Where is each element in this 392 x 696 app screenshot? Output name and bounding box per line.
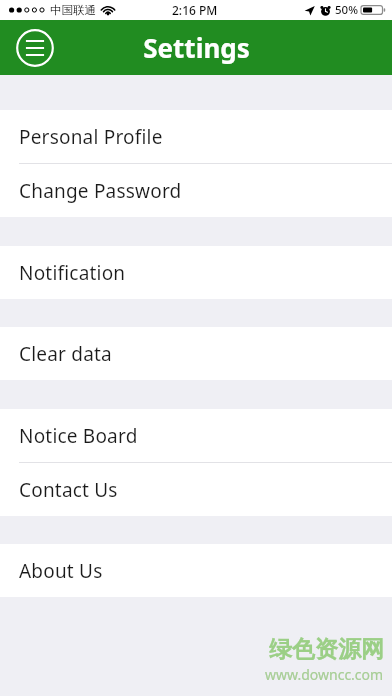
button[interactable]: Notification: [0, 246, 392, 299]
staticText: 中国联通: [50, 3, 96, 17]
staticText: Personal Profile: [19, 124, 163, 150]
staticText: www.downcc.com: [265, 665, 384, 684]
staticText: 50%: [335, 2, 358, 18]
button[interactable]: Open navigation menu: [14, 27, 56, 69]
staticText: 绿色资源网: [269, 635, 384, 664]
staticText: Clear data: [19, 341, 112, 367]
button[interactable]: Notice Board: [0, 409, 392, 462]
staticText: Notification: [19, 260, 126, 286]
button[interactable]: Contact Us: [0, 463, 392, 516]
staticText: 2:16 PM: [172, 2, 218, 18]
button[interactable]: Clear data: [0, 327, 392, 380]
staticText: Contact Us: [19, 477, 118, 503]
staticText: Settings: [143, 30, 250, 65]
button[interactable]: Personal Profile: [0, 110, 392, 163]
button[interactable]: About Us: [0, 544, 392, 597]
staticText: About Us: [19, 558, 103, 584]
staticText: Notice Board: [19, 423, 138, 449]
staticText: Change Password: [19, 178, 182, 204]
button[interactable]: Change Password: [0, 164, 392, 217]
